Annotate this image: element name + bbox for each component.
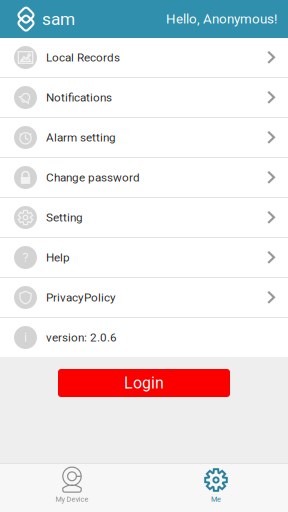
staticText: version: 2.0.6 bbox=[46, 331, 117, 344]
button[interactable]: Change password bbox=[0, 158, 288, 197]
staticText: Change password bbox=[46, 171, 140, 184]
staticText: sam bbox=[42, 9, 75, 29]
staticText: Hello, Anonymous! bbox=[166, 11, 277, 27]
staticText: Setting bbox=[46, 211, 83, 224]
staticText: Notifications bbox=[46, 91, 112, 104]
staticText: Me bbox=[211, 495, 221, 503]
button[interactable]: ? bbox=[0, 238, 288, 277]
button[interactable]: Local Records bbox=[0, 38, 288, 77]
staticText: Login bbox=[124, 374, 164, 392]
button[interactable]: Alarm setting bbox=[0, 118, 288, 157]
staticText: ? bbox=[22, 250, 28, 265]
button[interactable]: Me bbox=[144, 463, 288, 512]
staticText: PrivacyPolicy bbox=[46, 291, 116, 304]
button[interactable]: My Device bbox=[0, 463, 144, 512]
button[interactable]: Setting bbox=[0, 198, 288, 237]
button[interactable]: Login bbox=[58, 369, 230, 397]
staticText: Alarm setting bbox=[46, 131, 116, 144]
staticText: Help bbox=[46, 251, 70, 264]
button[interactable]: Notifications bbox=[0, 78, 288, 117]
staticText: My Device bbox=[55, 495, 88, 503]
staticText: i bbox=[24, 330, 27, 345]
staticText: Local Records bbox=[46, 51, 120, 64]
button[interactable]: PrivacyPolicy bbox=[0, 278, 288, 317]
